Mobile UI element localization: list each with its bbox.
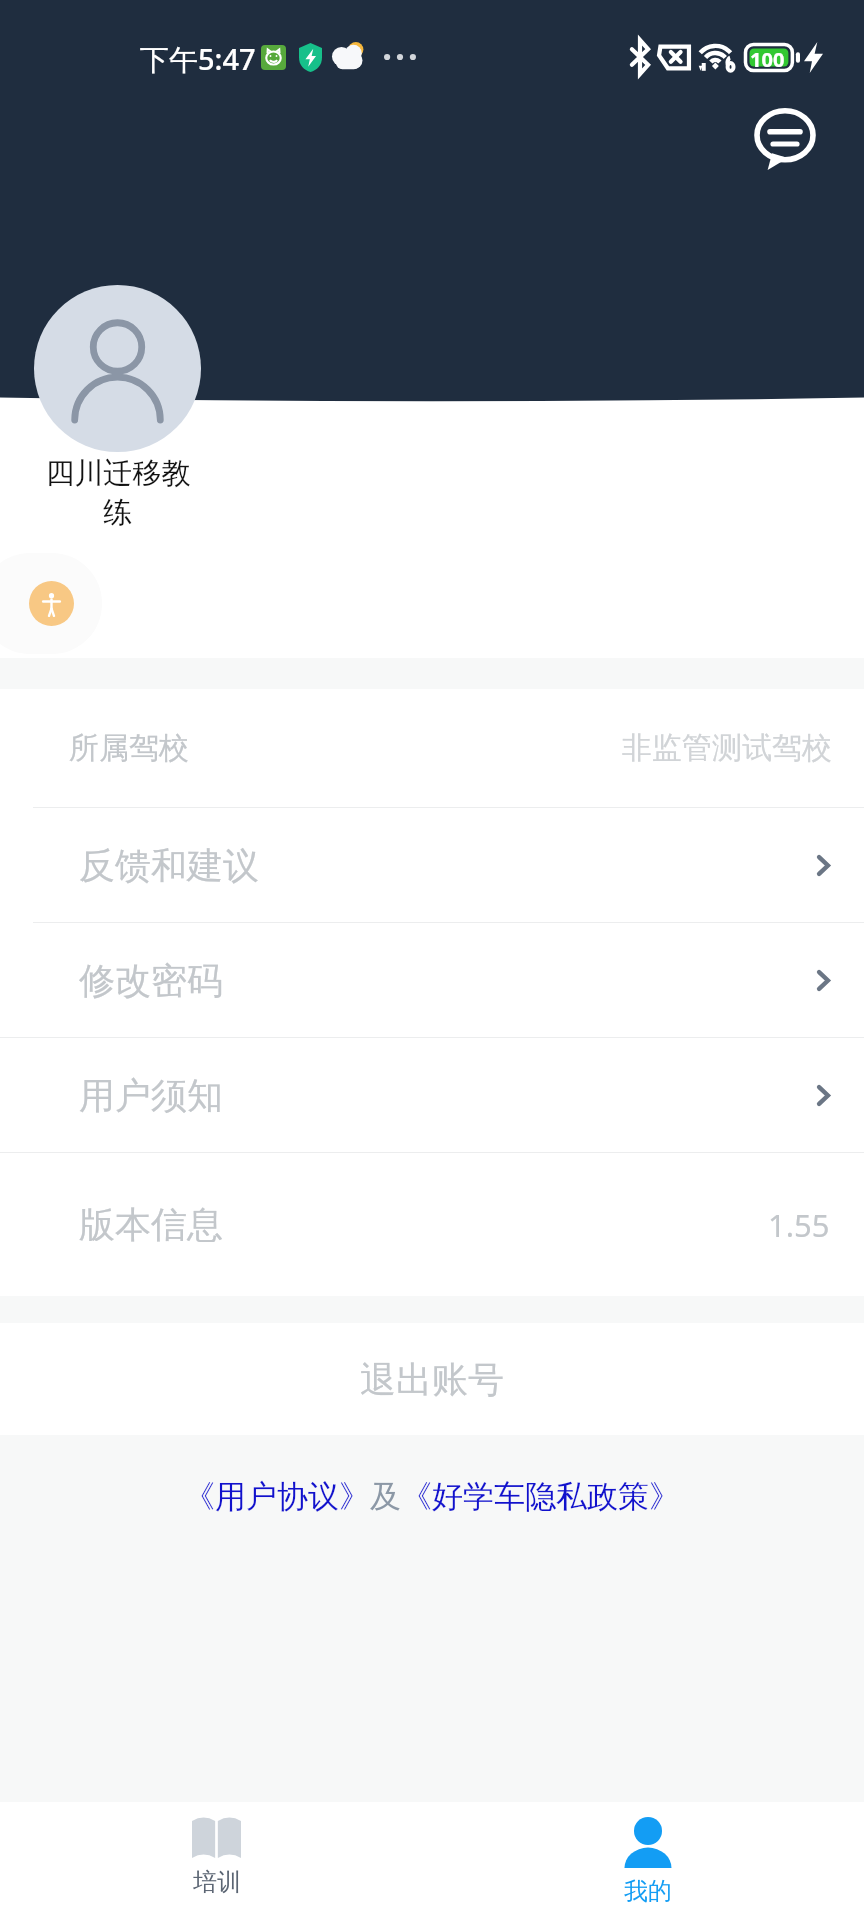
button[interactable]: 退出账号 [0, 1323, 864, 1435]
button[interactable]: 所属驾校 [0, 689, 864, 807]
staticText: 100 [750, 46, 785, 73]
staticText: 版本信息 [79, 1202, 223, 1247]
button[interactable]: 培训 [0, 1802, 432, 1920]
button[interactable]: 反馈和建议 [0, 808, 864, 922]
staticText: 非监管测试驾校 [622, 729, 832, 767]
staticText: 1.55 [768, 1204, 830, 1246]
staticText: 培训 [193, 1867, 241, 1897]
button[interactable]: Messages [752, 102, 818, 168]
staticText: 退出账号 [360, 1357, 504, 1402]
staticText: 所属驾校 [69, 729, 189, 767]
staticText: 《用户协议》及《好学车隐私政策》 [184, 1477, 680, 1516]
button[interactable]: Avatar [34, 285, 201, 452]
button[interactable]: 版本信息 [0, 1153, 864, 1296]
button[interactable]: 《用户协议》及《好学车隐私政策》 [184, 1477, 680, 1516]
staticText: 下午5:47 [140, 39, 256, 79]
staticText: 用户须知 [79, 1073, 223, 1118]
button[interactable]: 用户须知 [0, 1038, 864, 1152]
button[interactable]: Accessibility [0, 553, 102, 654]
button[interactable]: 修改密码 [0, 923, 864, 1037]
staticText: 修改密码 [79, 958, 223, 1003]
staticText: 我的 [624, 1876, 672, 1906]
button[interactable]: 我的 [432, 1802, 864, 1920]
staticText: 反馈和建议 [79, 843, 259, 888]
staticText: 四川迁移教练 [35, 455, 201, 530]
